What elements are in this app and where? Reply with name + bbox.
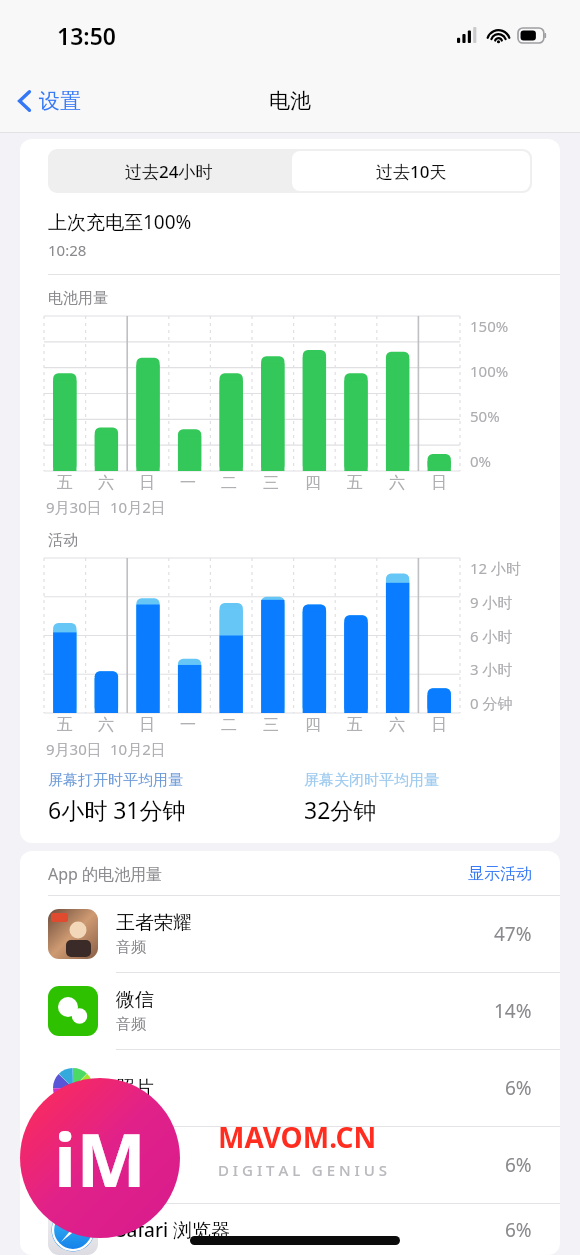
button[interactable]: 显示活动 (468, 864, 532, 884)
staticText: Safari 浏览器 (116, 1217, 231, 1243)
staticText: 一 (180, 473, 196, 493)
staticText: 屏幕关闭时平均用量 (304, 771, 439, 790)
staticText: 6% (505, 1217, 532, 1243)
staticText: 0% (470, 451, 492, 471)
staticText: 150% (470, 316, 509, 336)
staticText: iM (54, 1108, 146, 1209)
button[interactable]: 过去10天 (292, 151, 530, 191)
staticText: 设置 (39, 88, 81, 114)
staticText: 四 (305, 715, 321, 735)
staticText: 过去10天 (376, 160, 447, 183)
staticText: 六 (389, 473, 405, 493)
staticText: 音频 (116, 938, 146, 957)
staticText: 日 (139, 715, 155, 735)
staticText: 日 (139, 473, 155, 493)
staticText: 二 (221, 473, 237, 493)
staticText: 五 (57, 473, 73, 493)
staticText: MAVOM.CN (218, 1118, 377, 1156)
staticText: 13:50 (57, 20, 116, 51)
staticText: 12 小时 (470, 558, 522, 578)
staticText: 过去24小时 (125, 160, 213, 183)
button[interactable]: Safari 浏览器 (20, 1204, 560, 1255)
staticText: 三 (263, 715, 279, 735)
staticText: 活动 (48, 531, 78, 550)
staticText: 上次充电至100% (48, 209, 192, 235)
staticText: 47% (494, 921, 532, 947)
staticText: 32分钟 (304, 794, 377, 825)
staticText: 9 小时 (470, 592, 513, 612)
button[interactable]: 6% (20, 1127, 560, 1203)
staticText: 14% (494, 998, 532, 1024)
staticText: 照片 (116, 1076, 154, 1100)
staticText: 二 (221, 715, 237, 735)
staticText: 50% (470, 406, 500, 426)
staticText: 显示活动 (468, 864, 532, 884)
staticText: 五 (347, 473, 363, 493)
staticText: 6% (505, 1075, 532, 1101)
staticText: 三 (263, 473, 279, 493)
staticText: 3 小时 (470, 659, 513, 679)
button[interactable]: 微信 (20, 973, 560, 1049)
staticText: 一 (180, 715, 196, 735)
staticText: 音频 (116, 1015, 146, 1034)
staticText: 6% (505, 1152, 532, 1178)
button[interactable]: 过去24小时 (48, 149, 290, 193)
staticText: 四 (305, 473, 321, 493)
staticText: 电池 (269, 88, 311, 114)
staticText: 王者荣耀 (116, 911, 192, 935)
staticText: 日 (431, 473, 447, 493)
staticText: 10:28 (48, 240, 87, 260)
button[interactable]: 照片 (20, 1050, 560, 1126)
staticText: 10月2日 (110, 497, 166, 517)
button[interactable]: 设置 (12, 82, 87, 120)
staticText: 0 分钟 (470, 693, 513, 713)
staticText: 五 (57, 715, 73, 735)
staticText: 日 (431, 715, 447, 735)
staticText: 6 小时 (470, 626, 513, 646)
staticText: 100% (470, 361, 509, 381)
staticText: 9月30日 (46, 497, 102, 517)
staticText: 五 (347, 715, 363, 735)
staticText: App 的电池用量 (48, 863, 468, 885)
button[interactable]: 王者荣耀 (20, 896, 560, 972)
staticText: 10月2日 (110, 739, 166, 759)
staticText: 6小时 31分钟 (48, 794, 186, 825)
staticText: 六 (389, 715, 405, 735)
staticText: 微信 (116, 988, 154, 1012)
staticText: 屏幕打开时平均用量 (48, 771, 183, 790)
staticText: 六 (98, 473, 114, 493)
staticText: 电池用量 (48, 289, 108, 308)
staticText: 六 (98, 715, 114, 735)
staticText: D I G I T A L G E N I U S (218, 1160, 387, 1180)
staticText: 9月30日 (46, 739, 102, 759)
